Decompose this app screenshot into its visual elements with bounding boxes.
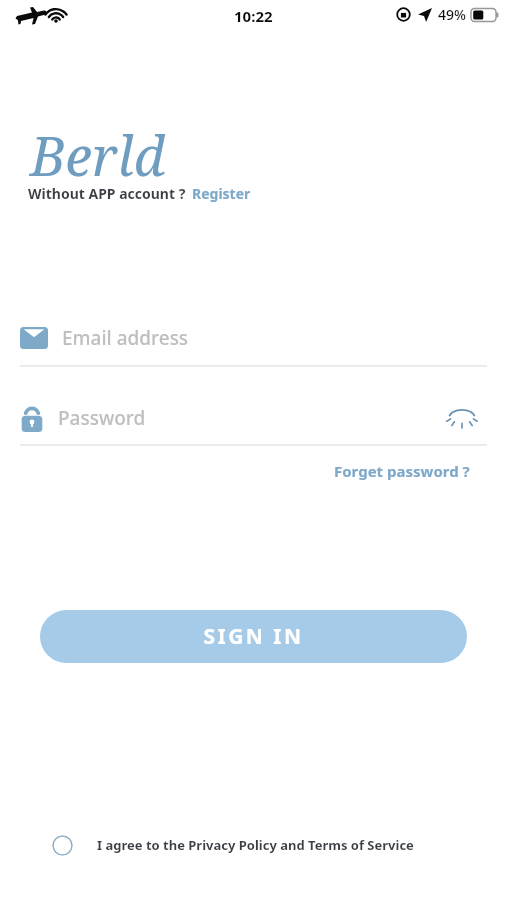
staticText: Forget password ? (334, 461, 470, 481)
button[interactable]: Forget password ? (330, 458, 474, 484)
button[interactable]: Password (20, 398, 487, 438)
staticText: Berld (30, 118, 165, 192)
staticText: Without APP account ? (28, 184, 186, 203)
staticText: 10:22 (234, 6, 273, 26)
staticText: SIGN IN (203, 622, 304, 651)
button[interactable]: Email address (20, 318, 487, 358)
staticText: Password (58, 405, 146, 431)
staticText: I agree to the Privacy Policy and Terms … (97, 836, 414, 854)
staticText: 49% (438, 5, 466, 24)
button[interactable]: SIGN IN (40, 610, 467, 663)
staticText: Email address (62, 325, 189, 351)
button[interactable]: Register (192, 184, 251, 203)
button[interactable]: Show password (444, 400, 480, 436)
staticText: Register (192, 184, 251, 203)
button[interactable]: I agree to the Privacy Policy and Terms … (52, 828, 414, 862)
